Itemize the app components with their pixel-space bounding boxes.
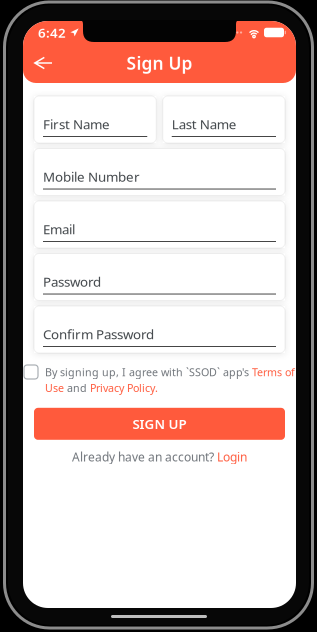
staticText: Login (217, 449, 247, 465)
staticText: First Name (43, 115, 110, 133)
button[interactable]: Email (34, 201, 285, 248)
staticText: Password (43, 273, 101, 290)
button[interactable]: SIGN UP (34, 408, 285, 440)
staticText: By signing up, I agree with `SSOD` app's (45, 365, 252, 379)
button[interactable]: Login (217, 449, 247, 465)
staticText: Mobile Number (43, 168, 140, 185)
staticText: Last Name (172, 115, 237, 133)
button[interactable]: Confirm Password (34, 306, 285, 353)
staticText: Already have an account? (72, 449, 214, 465)
staticText: and (64, 381, 90, 395)
button[interactable]: Password (34, 253, 285, 300)
staticText: 6:42 (38, 24, 66, 41)
staticText: Terms of (252, 365, 295, 379)
staticText: Email (43, 220, 75, 238)
button[interactable]: First Name (34, 96, 156, 143)
staticText: Confirm Password (43, 325, 154, 343)
button[interactable]: Back (34, 51, 70, 75)
staticText: Sign Up (126, 51, 192, 74)
staticText: Use (45, 381, 64, 395)
button[interactable]: Last Name (163, 96, 285, 143)
staticText: Privacy Policy. (90, 381, 158, 395)
button[interactable]: Mobile Number (34, 148, 285, 195)
staticText: SIGN UP (132, 415, 186, 433)
button[interactable]: Agree to terms (24, 365, 38, 379)
